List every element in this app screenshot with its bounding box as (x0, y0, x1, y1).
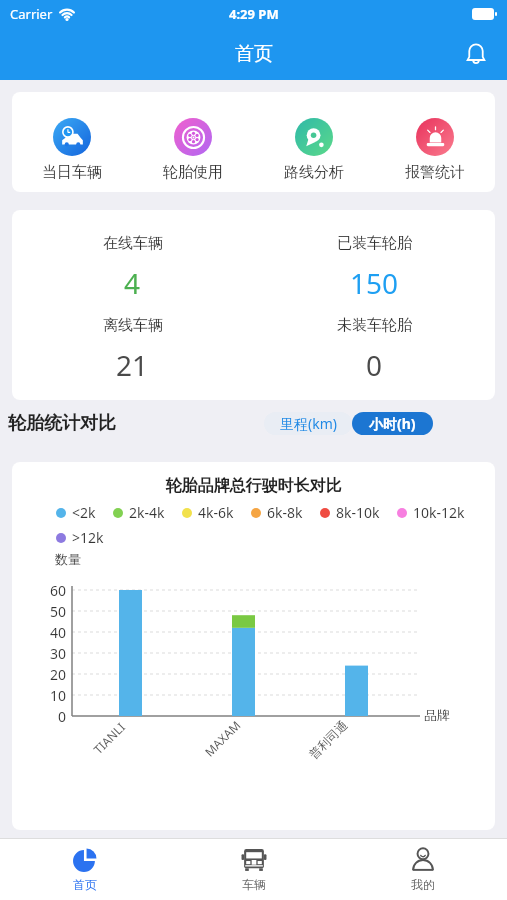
staticText: 已装车轮胎 (337, 234, 412, 253)
button[interactable]: 路线分析 (253, 118, 374, 182)
button[interactable]: 车辆 (169, 839, 338, 900)
staticText: 离线车辆 (103, 316, 163, 335)
staticText: 轮胎统计对比 (8, 412, 116, 435)
button[interactable]: 里程(km) (264, 412, 352, 435)
staticText: 0 (12, 707, 66, 726)
button[interactable]: 未装车轮胎 (253, 316, 495, 384)
button[interactable]: 当日车辆 (12, 118, 132, 182)
staticText: MAXAM (201, 716, 244, 759)
staticText: 首页 (73, 877, 97, 892)
staticText: 21 (116, 346, 149, 384)
staticText: 150 (350, 264, 399, 302)
button[interactable]: 报警统计 (374, 118, 495, 182)
staticText: 4k-6k (198, 503, 234, 522)
staticText: <2k (72, 503, 96, 522)
button[interactable]: 轮胎使用 (132, 118, 253, 182)
staticText: 我的 (411, 877, 435, 892)
staticText: 报警统计 (405, 163, 465, 182)
button[interactable] (461, 39, 491, 69)
button[interactable]: 离线车辆 (12, 316, 253, 384)
staticText: 首页 (235, 42, 273, 66)
staticText: 40 (12, 623, 66, 642)
staticText: 轮胎品牌总行驶时长对比 (12, 476, 495, 496)
staticText: 30 (12, 644, 66, 663)
button[interactable]: 已装车轮胎 (253, 234, 495, 302)
staticText: TIANLI (90, 719, 128, 757)
staticText: 20 (12, 665, 66, 684)
staticText: Carrier (10, 5, 53, 23)
staticText: 轮胎使用 (163, 163, 223, 182)
staticText: 10k-12k (413, 503, 465, 522)
button[interactable]: 在线车辆 (12, 234, 253, 302)
staticText: 4:29 PM (229, 5, 279, 23)
staticText: 未装车轮胎 (337, 316, 412, 335)
staticText: 50 (12, 602, 66, 621)
staticText: 在线车辆 (103, 234, 163, 253)
staticText: 0 (366, 346, 383, 384)
staticText: 路线分析 (284, 163, 344, 182)
staticText: 当日车辆 (42, 163, 102, 182)
staticText: 2k-4k (129, 503, 165, 522)
staticText: 10 (12, 686, 66, 705)
staticText: 6k-8k (267, 503, 303, 522)
button[interactable]: 首页 (0, 839, 169, 900)
staticText: 小时(h) (369, 414, 416, 433)
staticText: 8k-10k (336, 503, 380, 522)
staticText: 4 (124, 264, 141, 302)
staticText: 车辆 (242, 877, 266, 892)
button[interactable]: 小时(h) (352, 412, 433, 435)
staticText: 60 (12, 581, 66, 600)
staticText: 数量 (55, 551, 81, 567)
staticText: >12k (72, 528, 104, 547)
staticText: 普利司通 (306, 717, 350, 762)
button[interactable]: 我的 (338, 839, 507, 900)
staticText: 品牌 (424, 707, 450, 723)
staticText: 里程(km) (280, 414, 337, 433)
